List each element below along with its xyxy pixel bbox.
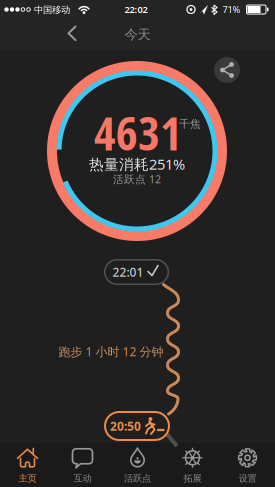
staticText: 22:02 (124, 3, 147, 16)
button[interactable]: 22:01 (104, 259, 169, 285)
staticText: 互动 (73, 473, 91, 484)
button[interactable]: 拓展 (165, 443, 220, 487)
staticText: 设置 (238, 473, 256, 484)
staticText: 活跃点 12 (113, 172, 161, 186)
staticText: 活跃点 (124, 473, 151, 484)
staticText: 热量消耗251% (89, 154, 185, 174)
staticText: 千焦 (179, 117, 201, 130)
button[interactable]: 互动 (55, 443, 110, 487)
staticText: 71% (222, 3, 240, 16)
button[interactable]: 返回 (56, 19, 86, 47)
staticText: 拓展 (183, 473, 201, 484)
button[interactable]: 分享 (214, 57, 240, 83)
staticText: 今天 (124, 26, 150, 43)
staticText: 主页 (18, 473, 36, 484)
staticText: 22:01 (112, 264, 143, 280)
button[interactable]: 活跃点 (110, 443, 165, 487)
staticText: 中国移动 (34, 4, 70, 16)
button[interactable]: 设置 (220, 443, 275, 487)
staticText: 跑步 1 小时 12 分钟 (58, 343, 163, 359)
button[interactable]: 主页 (0, 443, 55, 487)
button[interactable]: 20:50 (104, 411, 170, 441)
staticText: 20:50 (110, 418, 141, 434)
staticText: 4631 (94, 101, 182, 164)
